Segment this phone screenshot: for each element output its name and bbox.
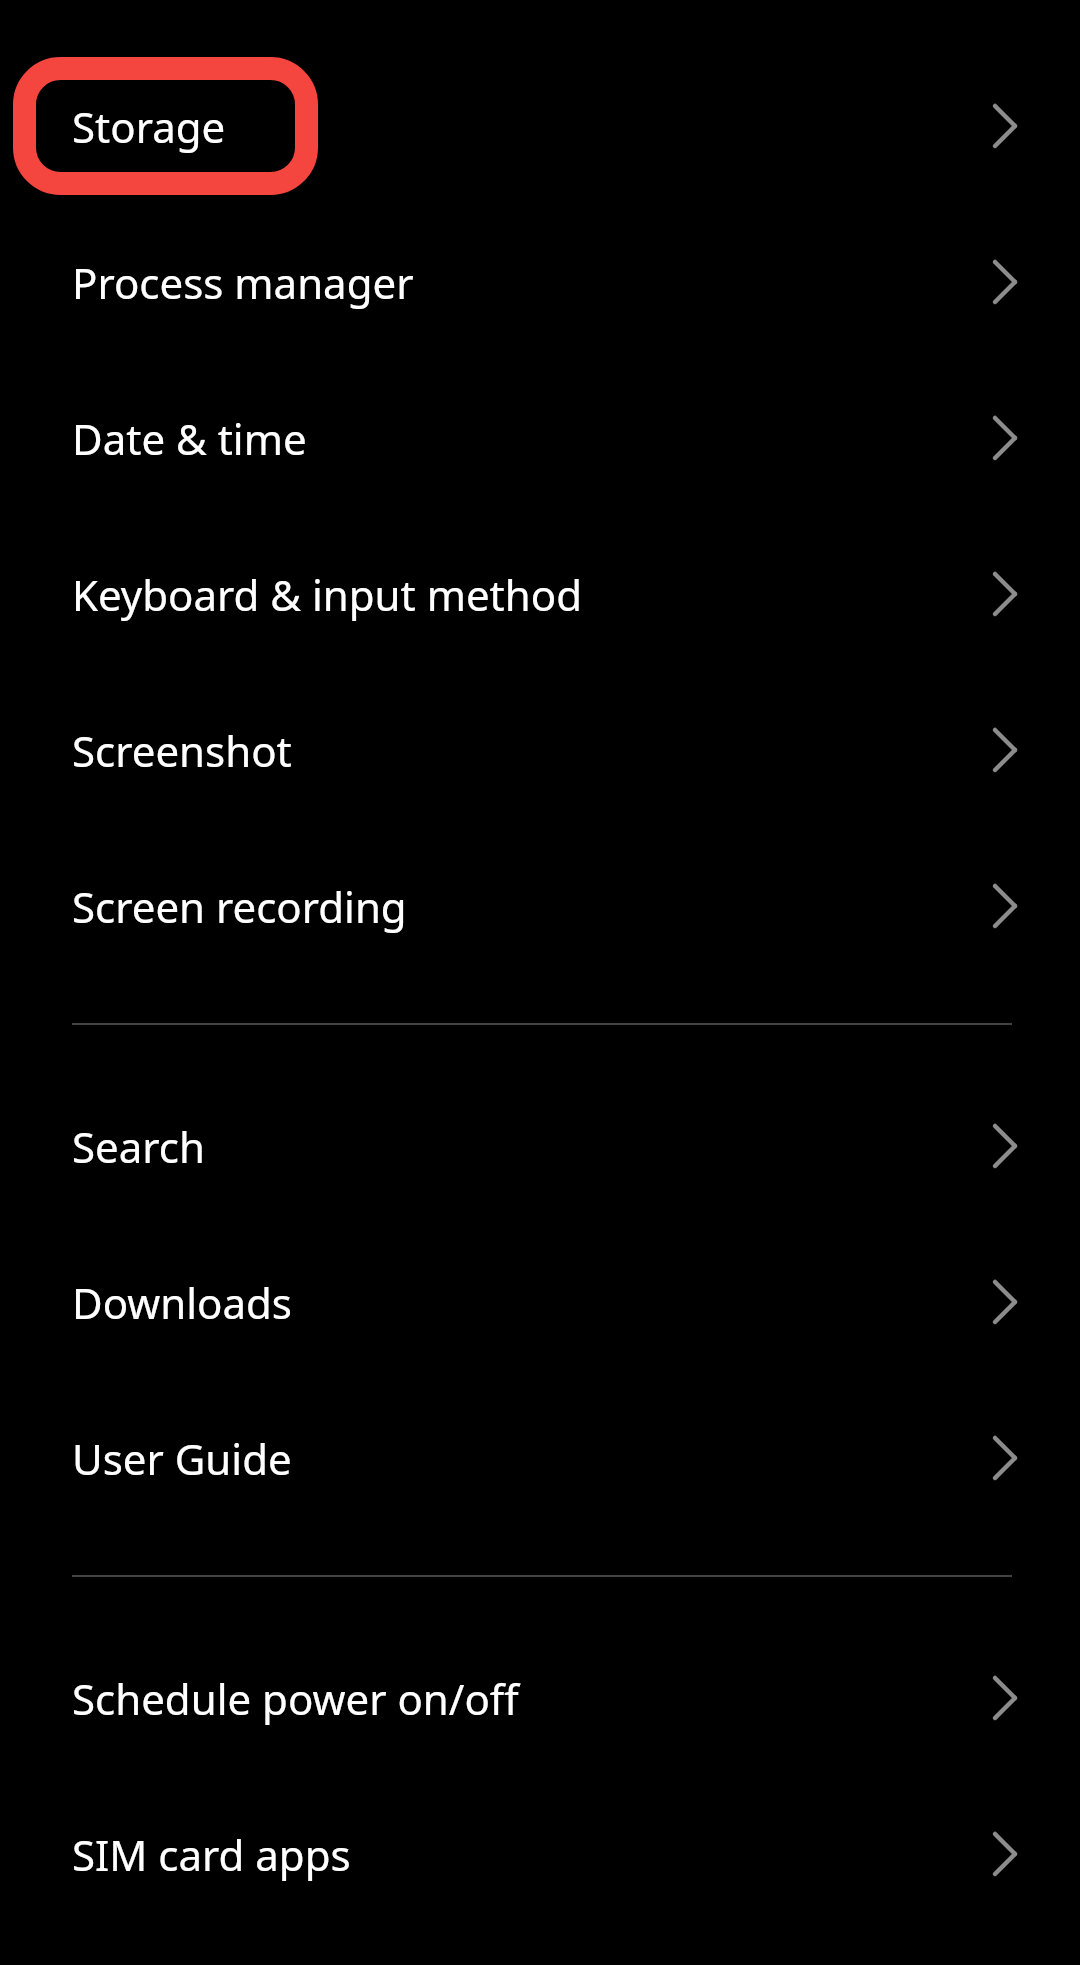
other: Open Downloads bbox=[992, 1279, 1018, 1325]
button[interactable]: Date & time bbox=[0, 360, 1080, 516]
button[interactable]: Keyboard & input method bbox=[0, 516, 1080, 672]
button[interactable]: Process manager bbox=[0, 204, 1080, 360]
staticText: Screenshot bbox=[72, 722, 292, 779]
button[interactable]: Downloads bbox=[0, 1224, 1080, 1380]
staticText: Search bbox=[72, 1118, 205, 1175]
other: Open Process manager bbox=[992, 259, 1018, 305]
button[interactable]: SIM card apps bbox=[0, 1776, 1080, 1932]
staticText: User Guide bbox=[72, 1430, 292, 1487]
staticText: Date & time bbox=[72, 410, 307, 467]
other: Open Search bbox=[992, 1123, 1018, 1169]
button[interactable]: Screenshot bbox=[0, 672, 1080, 828]
button[interactable]: Storage bbox=[0, 48, 1080, 204]
other: Open Keyboard & input method bbox=[992, 571, 1018, 617]
staticText: Process manager bbox=[72, 254, 414, 311]
other: Open SIM card apps bbox=[992, 1831, 1018, 1877]
staticText: Keyboard & input method bbox=[72, 566, 582, 623]
other: Open Storage bbox=[992, 103, 1018, 149]
staticText: Screen recording bbox=[72, 878, 407, 935]
button[interactable]: Schedule power on/off bbox=[0, 1620, 1080, 1776]
other: Open Date & time bbox=[992, 415, 1018, 461]
other: Open Schedule power on/off bbox=[992, 1675, 1018, 1721]
button[interactable]: Screen recording bbox=[0, 828, 1080, 984]
other: Open User Guide bbox=[992, 1435, 1018, 1481]
staticText: SIM card apps bbox=[72, 1826, 351, 1883]
staticText: Downloads bbox=[72, 1274, 292, 1331]
staticText: Storage bbox=[72, 98, 226, 155]
button[interactable]: Search bbox=[0, 1068, 1080, 1224]
staticText: Schedule power on/off bbox=[72, 1670, 519, 1727]
other: Open Screenshot bbox=[992, 727, 1018, 773]
button[interactable]: User Guide bbox=[0, 1380, 1080, 1536]
other: Open Screen recording bbox=[992, 883, 1018, 929]
